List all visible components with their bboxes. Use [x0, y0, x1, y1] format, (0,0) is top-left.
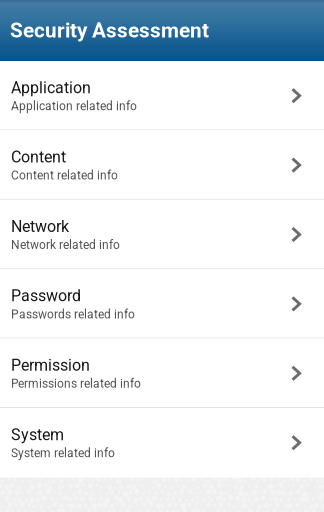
button[interactable]: Permission	[0, 339, 324, 408]
staticText: Content related info	[11, 168, 118, 182]
button[interactable]: Application	[0, 61, 324, 130]
staticText: System	[11, 425, 64, 444]
staticText: Content	[11, 148, 66, 166]
staticText: Application	[11, 78, 91, 97]
staticText: Network related info	[11, 238, 120, 252]
staticText: Security Assessment	[10, 18, 209, 43]
button[interactable]: System	[0, 408, 324, 477]
staticText: Passwords related info	[11, 307, 135, 321]
staticText: System related info	[11, 446, 115, 460]
staticText: Network	[11, 217, 69, 236]
staticText: Password	[11, 286, 81, 305]
button[interactable]: Network	[0, 200, 324, 269]
button[interactable]: Content	[0, 130, 324, 200]
button[interactable]: Password	[0, 269, 324, 339]
staticText: Permissions related info	[11, 377, 141, 391]
staticText: Application related info	[11, 99, 137, 113]
staticText: Permission	[11, 356, 90, 375]
